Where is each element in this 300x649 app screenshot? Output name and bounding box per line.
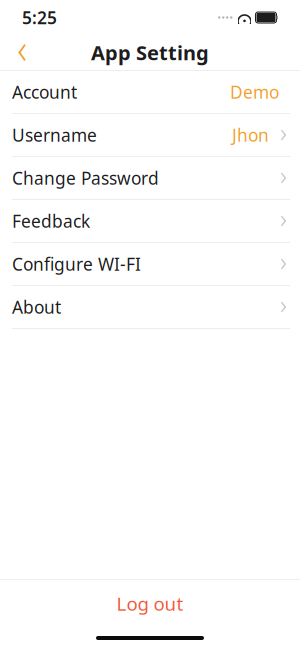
button[interactable]: Log out — [0, 580, 300, 627]
staticText: Jhon — [232, 123, 269, 146]
button[interactable]: About — [0, 286, 300, 329]
staticText: About — [12, 295, 61, 318]
staticText: Account — [12, 80, 77, 103]
staticText: Log out — [116, 591, 183, 616]
button[interactable]: Account — [0, 71, 300, 114]
staticText: Username — [12, 123, 97, 146]
staticText: Demo — [230, 80, 279, 103]
staticText: Feedback — [12, 209, 90, 232]
button[interactable]: Configure WI-FI — [0, 243, 300, 286]
staticText: App Setting — [91, 39, 209, 66]
staticText: 5:25 — [22, 6, 57, 29]
button[interactable]: Change Password — [0, 157, 300, 200]
button[interactable]: Feedback — [0, 200, 300, 243]
button[interactable]: Username — [0, 114, 300, 157]
staticText: Configure WI-FI — [12, 252, 141, 275]
button[interactable]: Back — [0, 35, 44, 69]
staticText: Change Password — [12, 166, 159, 189]
